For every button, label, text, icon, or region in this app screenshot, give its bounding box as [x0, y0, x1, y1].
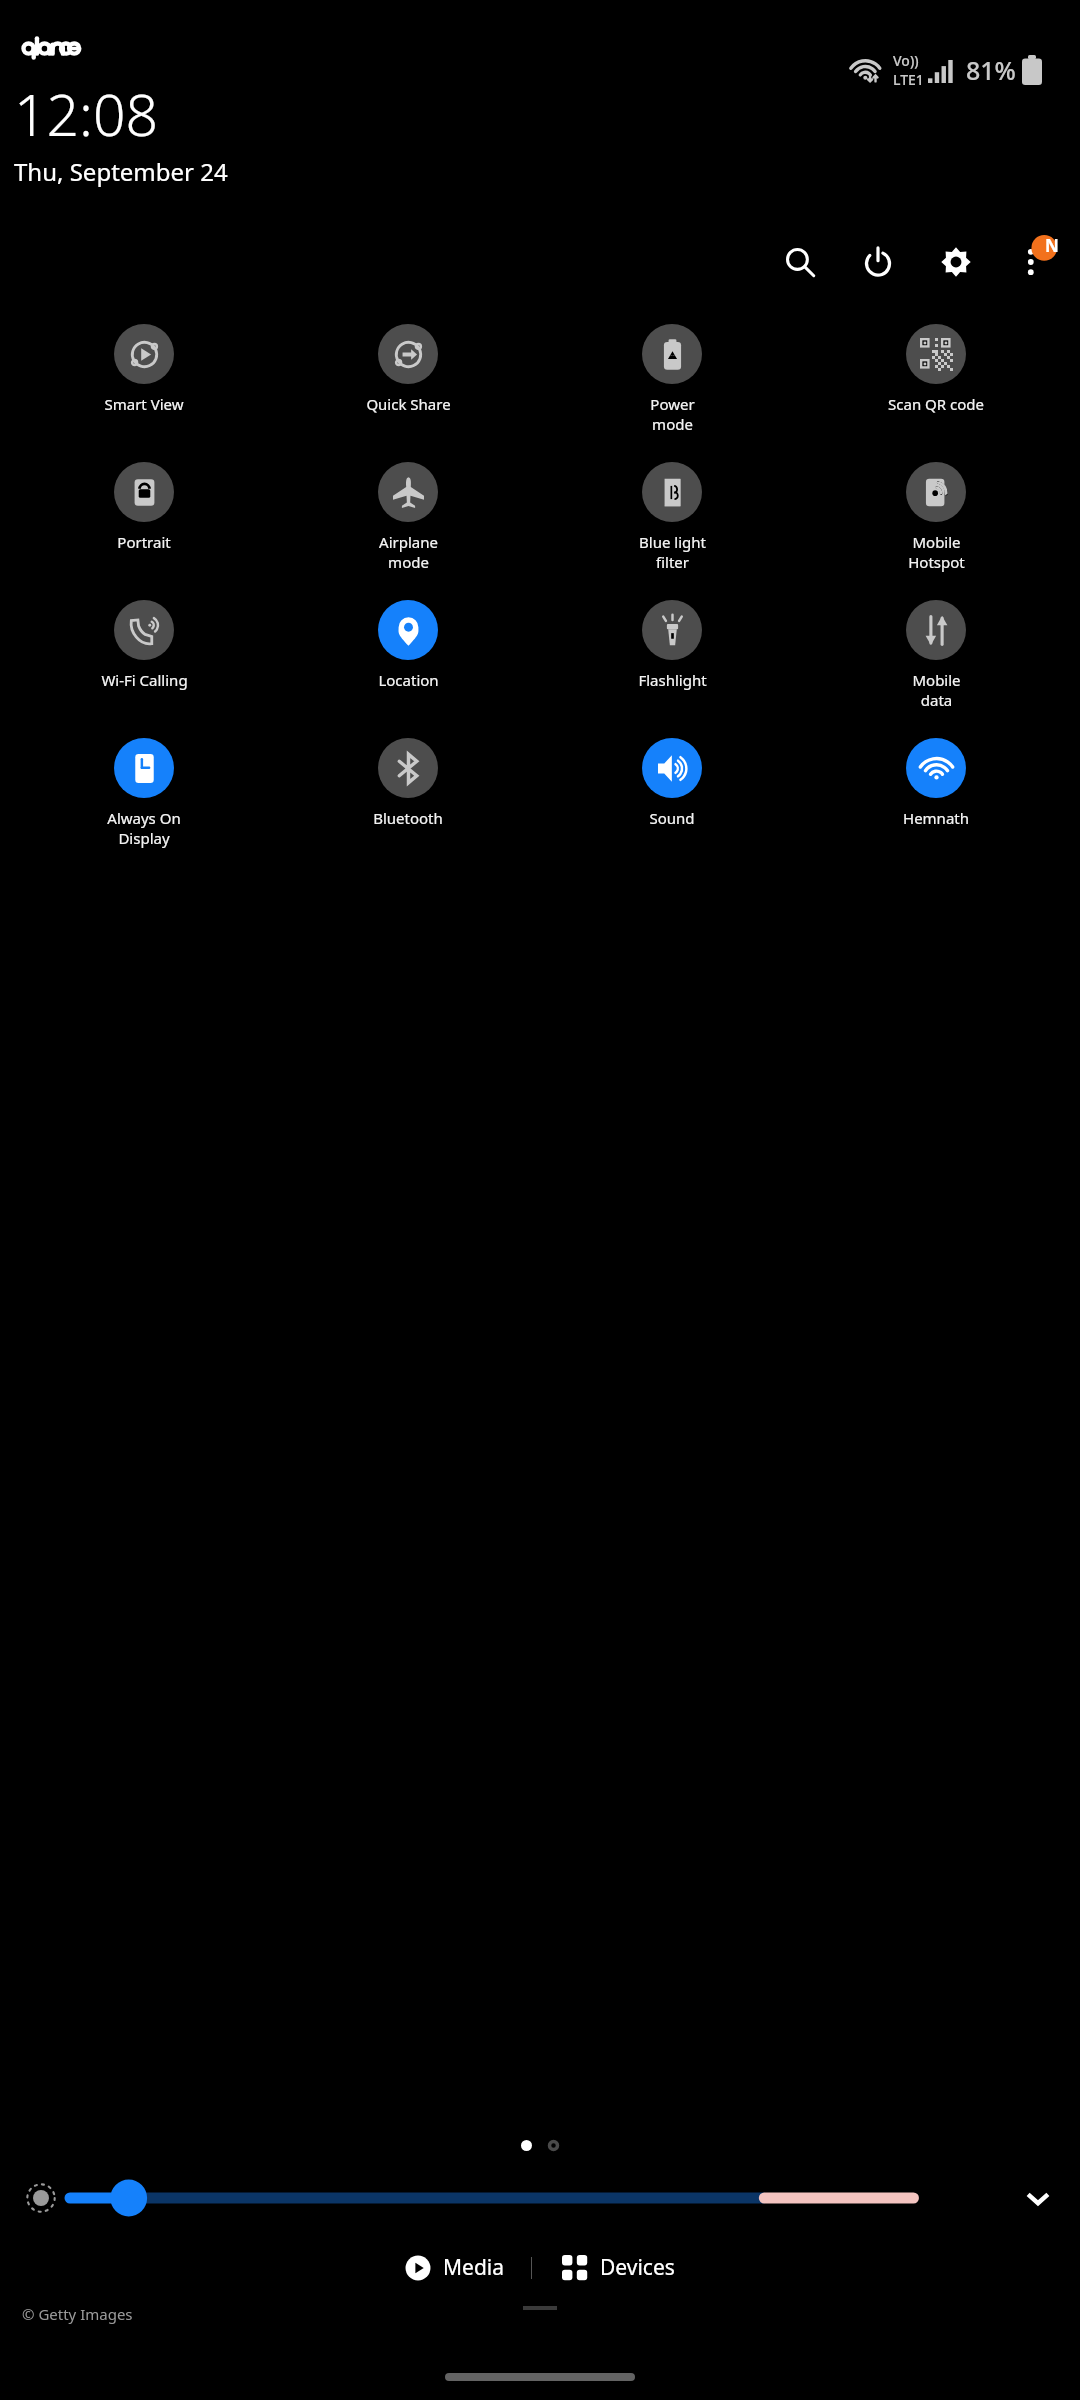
button[interactable]: Power: [846, 230, 910, 294]
staticText: Airplane mode: [379, 532, 438, 572]
button[interactable]: Search: [768, 230, 832, 294]
button[interactable]: More options: [1002, 230, 1066, 294]
staticText: Always On Display: [107, 808, 181, 848]
button[interactable]: Expand: [1018, 2178, 1058, 2218]
button[interactable]: Hemnath: [804, 734, 1068, 832]
button[interactable]: Always On Display: [12, 734, 276, 852]
staticText: © Getty Images: [22, 2304, 133, 2324]
staticText: Smart View: [104, 394, 184, 414]
button[interactable]: Settings: [924, 230, 988, 294]
staticText: Scan QR code: [888, 394, 984, 414]
button[interactable]: Power mode: [540, 320, 804, 438]
button[interactable]: Scan QR code: [804, 320, 1068, 418]
button[interactable]: Location: [276, 596, 540, 694]
button[interactable]: Blue light filter: [540, 458, 804, 576]
button[interactable]: Devices: [550, 2245, 687, 2290]
button[interactable]: Media: [393, 2245, 517, 2290]
staticText: N: [1045, 234, 1059, 257]
staticText: Power mode: [650, 394, 695, 434]
staticText: Thu, September 24: [14, 155, 228, 188]
staticText: Mobile Hotspot: [908, 532, 965, 572]
button[interactable]: Airplane mode: [276, 458, 540, 576]
staticText: Bluetooth: [373, 808, 443, 828]
staticText: Vo)): [893, 51, 919, 70]
button[interactable]: Bluetooth: [276, 734, 540, 832]
staticText: Sound: [649, 808, 695, 828]
button[interactable]: Quick Share: [276, 320, 540, 418]
staticText: 12:08: [14, 75, 159, 153]
staticText: Location: [378, 670, 439, 690]
button[interactable]: Brightness: [70, 2175, 1002, 2221]
staticText: Blue light filter: [639, 532, 706, 572]
staticText: LTE1: [893, 70, 924, 89]
staticText: Hemnath: [903, 808, 969, 828]
button[interactable]: Flashlight: [540, 596, 804, 694]
button[interactable]: Wi-Fi Calling: [12, 596, 276, 694]
button[interactable]: Mobile Hotspot: [804, 458, 1068, 576]
staticText: Portrait: [117, 532, 171, 552]
staticText: Flashlight: [638, 670, 707, 690]
staticText: Media: [443, 2253, 505, 2282]
staticText: Mobile data: [912, 670, 961, 710]
button[interactable]: Sound: [540, 734, 804, 832]
staticText: 81%: [966, 53, 1016, 87]
staticText: Devices: [600, 2253, 675, 2282]
staticText: Wi-Fi Calling: [101, 670, 188, 690]
button[interactable]: Smart View: [12, 320, 276, 418]
button[interactable]: Portrait: [12, 458, 276, 556]
button[interactable]: Mobile data: [804, 596, 1068, 714]
staticText: Quick Share: [366, 394, 451, 414]
